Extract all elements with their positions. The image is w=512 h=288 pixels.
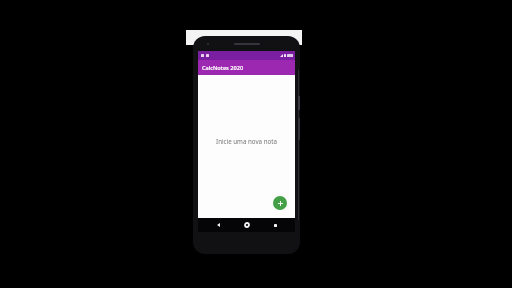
- button[interactable]: Recent apps: [267, 218, 283, 232]
- button[interactable]: Nova nota: [273, 196, 287, 210]
- staticText: Inicie uma nova nota: [216, 137, 277, 145]
- staticText: CalcNotes 2020: [202, 64, 244, 72]
- button[interactable]: Home: [239, 218, 255, 232]
- button[interactable]: Back: [210, 218, 226, 232]
- button[interactable]: CalcNotes 2020: [198, 60, 295, 75]
